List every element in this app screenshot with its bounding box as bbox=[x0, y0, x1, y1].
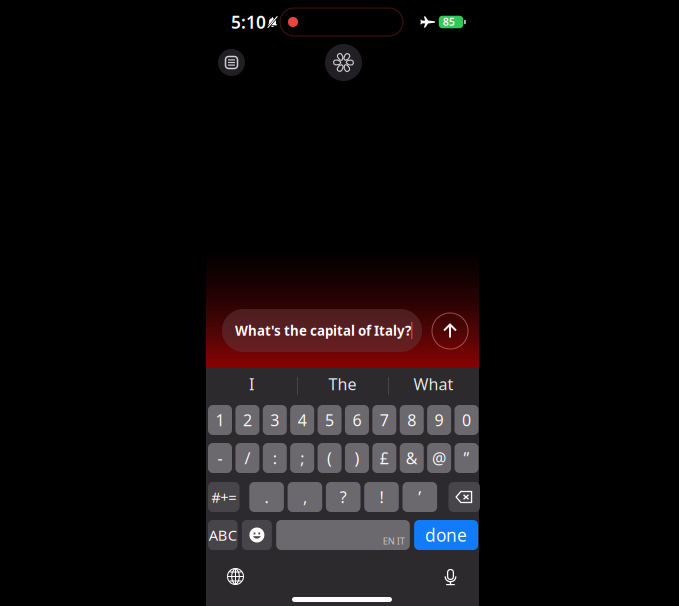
staticText: ” bbox=[463, 447, 469, 469]
button[interactable]: ! bbox=[364, 482, 399, 512]
staticText: #+= bbox=[211, 487, 236, 507]
button[interactable]: ’ bbox=[402, 482, 437, 512]
button[interactable]: Switch keyboard bbox=[227, 568, 244, 585]
staticText: 8 bbox=[407, 409, 416, 431]
staticText: 7 bbox=[380, 409, 389, 431]
button[interactable]: I bbox=[206, 368, 297, 400]
staticText: 0 bbox=[462, 409, 471, 431]
button[interactable]: Send bbox=[432, 313, 468, 349]
button[interactable]: & bbox=[400, 443, 424, 473]
staticText: 5:10 bbox=[231, 10, 266, 33]
staticText: What bbox=[413, 373, 453, 395]
button[interactable]: ( bbox=[318, 443, 342, 473]
button[interactable]: 4 bbox=[290, 405, 314, 435]
button[interactable]: What bbox=[388, 368, 479, 400]
staticText: What's the capital of Italy? bbox=[235, 322, 411, 339]
staticText: ! bbox=[379, 486, 383, 508]
button[interactable]: ) bbox=[345, 443, 369, 473]
staticText: ? bbox=[340, 486, 347, 508]
staticText: . bbox=[265, 486, 269, 508]
button[interactable]: £ bbox=[372, 443, 396, 473]
staticText: ) bbox=[354, 447, 359, 469]
button[interactable]: Delete bbox=[448, 482, 480, 512]
button[interactable]: 7 bbox=[372, 405, 396, 435]
staticText: ( bbox=[327, 447, 332, 469]
button[interactable]: The bbox=[297, 368, 388, 400]
button[interactable]: 6 bbox=[345, 405, 369, 435]
button[interactable]: 5 bbox=[318, 405, 342, 435]
button[interactable]: done bbox=[414, 520, 478, 550]
button[interactable]: : bbox=[263, 443, 287, 473]
staticText: , bbox=[303, 486, 307, 508]
staticText: I bbox=[249, 373, 254, 395]
staticText: @ bbox=[432, 447, 446, 469]
staticText: / bbox=[244, 447, 250, 469]
button[interactable]: Assistant bbox=[325, 44, 362, 81]
button[interactable]: Emoji bbox=[242, 520, 272, 550]
button[interactable]: . bbox=[249, 482, 284, 512]
button[interactable]: #+= bbox=[208, 482, 239, 512]
button[interactable]: ABC bbox=[208, 520, 238, 550]
staticText: £ bbox=[380, 447, 389, 469]
staticText: 4 bbox=[298, 409, 307, 431]
button[interactable]: 0 bbox=[454, 405, 478, 435]
staticText: ABC bbox=[209, 525, 237, 545]
button[interactable]: @ bbox=[427, 443, 451, 473]
button[interactable]: / bbox=[235, 443, 259, 473]
staticText: 1 bbox=[215, 409, 224, 431]
staticText: 6 bbox=[352, 409, 361, 431]
staticText: : bbox=[273, 447, 277, 469]
staticText: ; bbox=[300, 447, 304, 469]
button[interactable]: ; bbox=[290, 443, 314, 473]
button[interactable]: Dictate bbox=[443, 568, 458, 586]
staticText: & bbox=[406, 447, 418, 469]
button[interactable]: Space bbox=[276, 520, 410, 550]
button[interactable]: 8 bbox=[400, 405, 424, 435]
staticText: 85 bbox=[443, 14, 455, 29]
staticText: 3 bbox=[270, 409, 279, 431]
staticText: 2 bbox=[243, 409, 252, 431]
button[interactable]: 3 bbox=[263, 405, 287, 435]
button[interactable]: , bbox=[288, 482, 322, 512]
button[interactable]: 1 bbox=[208, 405, 232, 435]
button[interactable]: 9 bbox=[427, 405, 451, 435]
staticText: 9 bbox=[435, 409, 444, 431]
staticText: 5 bbox=[325, 409, 334, 431]
button[interactable]: - bbox=[208, 443, 232, 473]
button[interactable]: 2 bbox=[235, 405, 259, 435]
button[interactable]: Sidebar bbox=[218, 49, 245, 76]
button[interactable]: ? bbox=[326, 482, 360, 512]
staticText: - bbox=[217, 447, 222, 469]
button[interactable]: ” bbox=[454, 443, 478, 473]
staticText: ’ bbox=[418, 486, 421, 508]
staticText: done bbox=[425, 523, 467, 546]
staticText: The bbox=[328, 373, 356, 395]
button[interactable]: What's the capital of Italy? bbox=[222, 309, 422, 352]
staticText: EN IT bbox=[383, 535, 405, 547]
